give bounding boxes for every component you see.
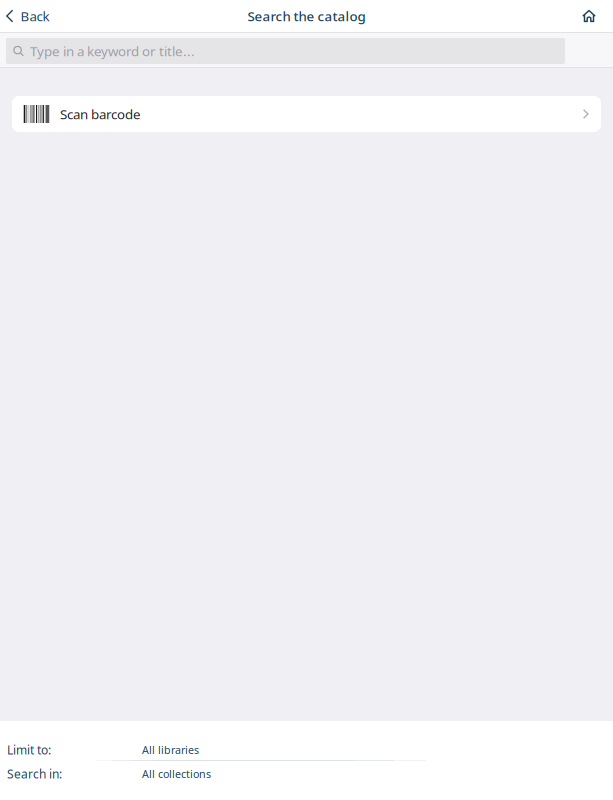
staticText: Search in: [7, 766, 62, 782]
staticText: Search the catalog [247, 7, 365, 25]
staticText: All libraries [142, 743, 199, 757]
staticText: Scan barcode [60, 105, 141, 123]
button[interactable]: Search in: [0, 766, 613, 778]
staticText: Limit to: [7, 742, 51, 758]
staticText: Back [20, 7, 49, 25]
button[interactable]: Home [582, 0, 613, 32]
button[interactable]: Search field: type in a keyword or title [0, 33, 613, 64]
button[interactable]: Back [0, 0, 61, 32]
staticText: Type in a keyword or title... [30, 42, 195, 60]
staticText: All collections [142, 767, 211, 781]
button[interactable]: Scan barcode [12, 96, 601, 132]
button[interactable]: Limit to: [0, 742, 613, 754]
